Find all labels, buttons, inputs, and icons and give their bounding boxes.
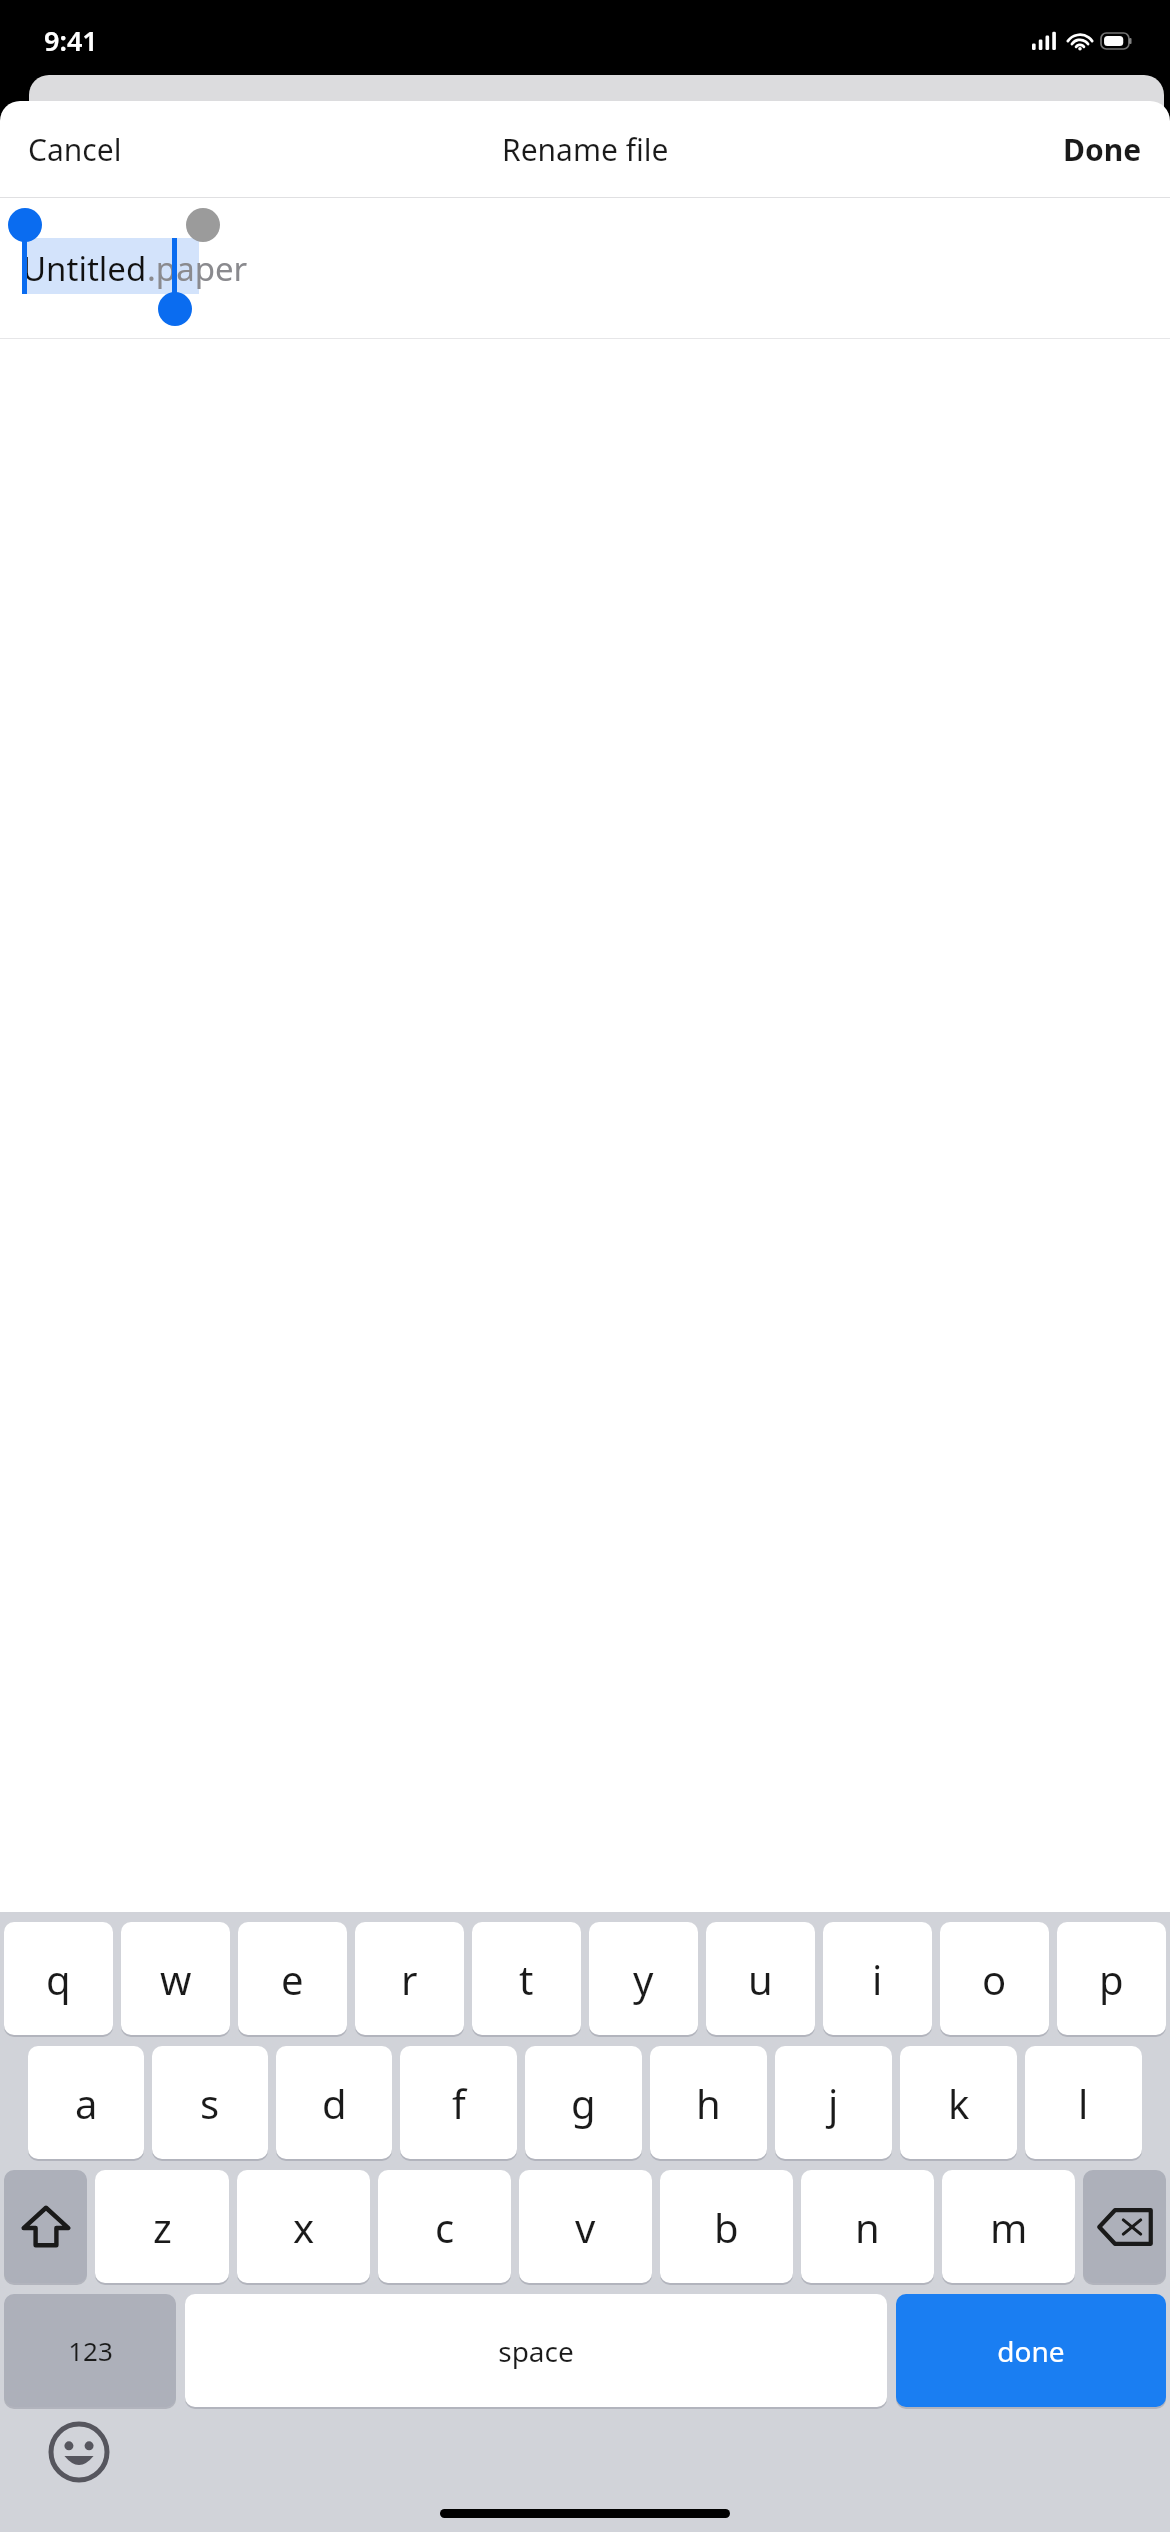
- button[interactable]: d: [276, 2046, 392, 2159]
- staticText: Cancel: [28, 129, 122, 170]
- staticText: o: [982, 1952, 1007, 2006]
- button[interactable]: u: [706, 1922, 815, 2035]
- button[interactable]: Untitled: [0, 198, 1170, 338]
- button[interactable]: done: [896, 2294, 1166, 2407]
- button[interactable]: e: [238, 1922, 347, 2035]
- button[interactable]: b: [660, 2170, 793, 2283]
- button[interactable]: x: [237, 2170, 370, 2283]
- staticText: done: [997, 2332, 1065, 2370]
- staticText: i: [872, 1952, 883, 2006]
- button[interactable]: s: [152, 2046, 268, 2159]
- button[interactable]: k: [900, 2046, 1017, 2159]
- staticText: m: [990, 2200, 1028, 2254]
- staticText: w: [160, 1952, 192, 2006]
- staticText: 123: [68, 2333, 113, 2368]
- button[interactable]: m: [942, 2170, 1075, 2283]
- button[interactable]: n: [801, 2170, 934, 2283]
- staticText: k: [948, 2076, 970, 2130]
- staticText: a: [75, 2076, 98, 2130]
- button[interactable]: z: [95, 2170, 229, 2283]
- button[interactable]: g: [525, 2046, 642, 2159]
- button[interactable]: q: [4, 1922, 113, 2035]
- button[interactable]: Shift: [4, 2170, 87, 2283]
- staticText: z: [153, 2200, 172, 2254]
- button[interactable]: space: [185, 2294, 887, 2407]
- staticText: Untitled: [22, 246, 147, 291]
- staticText: n: [855, 2200, 880, 2254]
- button[interactable]: a: [28, 2046, 144, 2159]
- button[interactable]: 123: [4, 2294, 176, 2407]
- staticText: .paper: [147, 246, 248, 291]
- button[interactable]: o: [940, 1922, 1049, 2035]
- staticText: 9:41: [44, 22, 98, 59]
- staticText: p: [1099, 1952, 1124, 2006]
- staticText: f: [452, 2076, 466, 2130]
- button[interactable]: p: [1057, 1922, 1166, 2035]
- button[interactable]: Emoji: [48, 2421, 110, 2483]
- button[interactable]: w: [121, 1922, 230, 2035]
- button[interactable]: r: [355, 1922, 464, 2035]
- staticText: h: [696, 2076, 721, 2130]
- staticText: x: [293, 2200, 315, 2254]
- staticText: d: [322, 2076, 347, 2130]
- button[interactable]: Done: [1035, 115, 1170, 184]
- button[interactable]: t: [472, 1922, 581, 2035]
- button[interactable]: l: [1025, 2046, 1142, 2159]
- staticText: r: [401, 1952, 418, 2006]
- staticText: space: [498, 2332, 574, 2370]
- staticText: g: [571, 2076, 596, 2130]
- staticText: Rename file: [502, 129, 669, 170]
- button[interactable]: i: [823, 1922, 932, 2035]
- button[interactable]: h: [650, 2046, 767, 2159]
- staticText: v: [575, 2200, 596, 2254]
- button[interactable]: f: [400, 2046, 517, 2159]
- staticText: s: [200, 2076, 220, 2130]
- button[interactable]: v: [519, 2170, 652, 2283]
- staticText: j: [828, 2076, 839, 2130]
- button[interactable]: Backspace: [1083, 2170, 1166, 2283]
- staticText: c: [435, 2200, 455, 2254]
- button[interactable]: y: [589, 1922, 698, 2035]
- staticText: l: [1078, 2076, 1089, 2130]
- staticText: b: [714, 2200, 739, 2254]
- staticText: e: [281, 1952, 304, 2006]
- staticText: t: [519, 1952, 534, 2006]
- button[interactable]: j: [775, 2046, 892, 2159]
- staticText: Done: [1063, 129, 1142, 170]
- staticText: u: [748, 1952, 773, 2006]
- button[interactable]: Cancel: [0, 115, 150, 184]
- staticText: y: [633, 1952, 654, 2006]
- button[interactable]: c: [378, 2170, 511, 2283]
- staticText: q: [46, 1952, 71, 2006]
